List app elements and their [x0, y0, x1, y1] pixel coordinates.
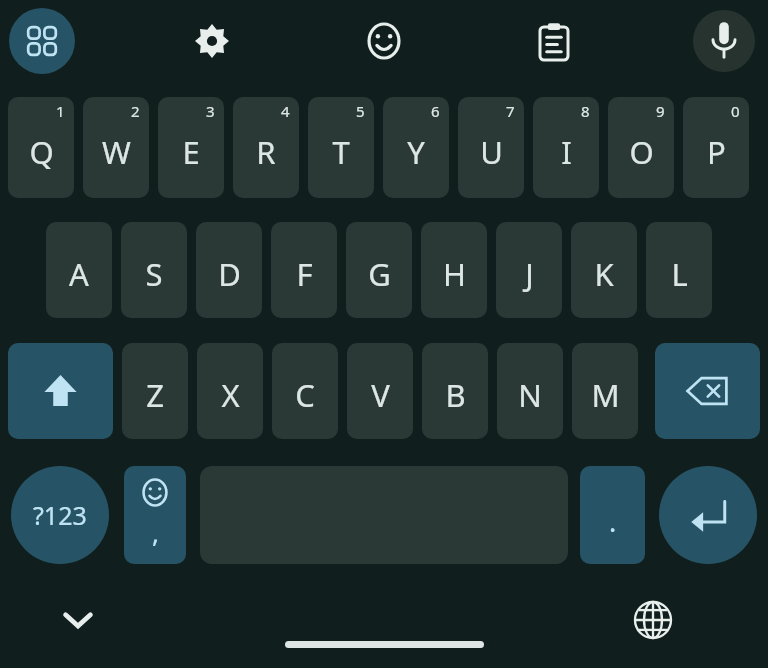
button[interactable]: H [421, 222, 487, 318]
button[interactable]: Hide keyboard [52, 598, 104, 642]
staticText: 0 [731, 101, 740, 121]
button[interactable]: Enter [659, 466, 757, 564]
staticText: ?123 [33, 498, 87, 532]
staticText: Z [146, 374, 164, 416]
button[interactable]: B [422, 343, 488, 439]
staticText: X [221, 374, 240, 416]
button[interactable]: ?123 [11, 466, 109, 564]
staticText: L [671, 253, 688, 295]
staticText: V [371, 374, 390, 416]
button[interactable]: Z [122, 343, 188, 439]
staticText: . [609, 503, 617, 540]
button[interactable]: Change language [629, 596, 677, 644]
button[interactable]: Emoji [355, 12, 413, 70]
staticText: D [218, 253, 241, 295]
button[interactable]: I [533, 97, 599, 198]
staticText: 5 [356, 101, 365, 121]
button[interactable]: P [683, 97, 749, 198]
staticText: O [629, 131, 654, 173]
button[interactable]: Backspace [655, 343, 760, 439]
button[interactable]: S [121, 222, 187, 318]
staticText: K [594, 253, 614, 295]
staticText: 6 [431, 101, 440, 121]
staticText: J [525, 253, 534, 295]
button[interactable]: . [580, 466, 645, 564]
button[interactable]: G [346, 222, 412, 318]
staticText: F [296, 253, 313, 295]
button[interactable]: R [233, 97, 299, 198]
button[interactable]: Q [8, 97, 74, 198]
button[interactable]: V [347, 343, 413, 439]
button[interactable]: M [572, 343, 638, 439]
button[interactable]: J [496, 222, 562, 318]
staticText: M [591, 374, 620, 416]
staticText: 8 [581, 101, 590, 121]
staticText: B [445, 374, 466, 416]
button[interactable]: O [608, 97, 674, 198]
button[interactable]: N [497, 343, 563, 439]
staticText: 2 [131, 101, 140, 121]
staticText: C [295, 374, 315, 416]
button[interactable]: Apps [9, 8, 75, 74]
staticText: N [518, 374, 542, 416]
staticText: P [707, 131, 726, 173]
staticText: I [561, 131, 572, 173]
staticText: H [443, 253, 466, 295]
staticText: 1 [56, 101, 65, 121]
staticText: , [152, 515, 159, 550]
button[interactable]: Emoji and comma [124, 466, 186, 564]
button[interactable]: Clipboard [525, 12, 583, 70]
staticText: 4 [281, 101, 290, 121]
staticText: E [182, 131, 200, 173]
button[interactable]: Voice input [693, 10, 755, 72]
staticText: 3 [206, 101, 215, 121]
staticText: U [480, 131, 503, 173]
button[interactable]: W [83, 97, 149, 198]
button[interactable]: F [271, 222, 337, 318]
staticText: Q [29, 131, 54, 173]
button[interactable]: X [197, 343, 263, 439]
staticText: S [145, 253, 163, 295]
button[interactable]: Y [383, 97, 449, 198]
button[interactable]: L [646, 222, 712, 318]
button[interactable]: A [46, 222, 112, 318]
staticText: 7 [506, 101, 515, 121]
staticText: W [102, 131, 131, 173]
button[interactable]: C [272, 343, 338, 439]
staticText: R [256, 131, 276, 173]
staticText: A [69, 253, 89, 295]
button[interactable]: Settings [183, 12, 241, 70]
staticText: G [368, 253, 391, 295]
button[interactable]: T [308, 97, 374, 198]
button[interactable]: U [458, 97, 524, 198]
button[interactable]: Shift [8, 343, 113, 439]
staticText: T [332, 131, 350, 173]
button[interactable]: D [196, 222, 262, 318]
button[interactable]: K [571, 222, 637, 318]
button[interactable]: E [158, 97, 224, 198]
staticText: 9 [656, 101, 665, 121]
staticText: Y [407, 131, 425, 173]
